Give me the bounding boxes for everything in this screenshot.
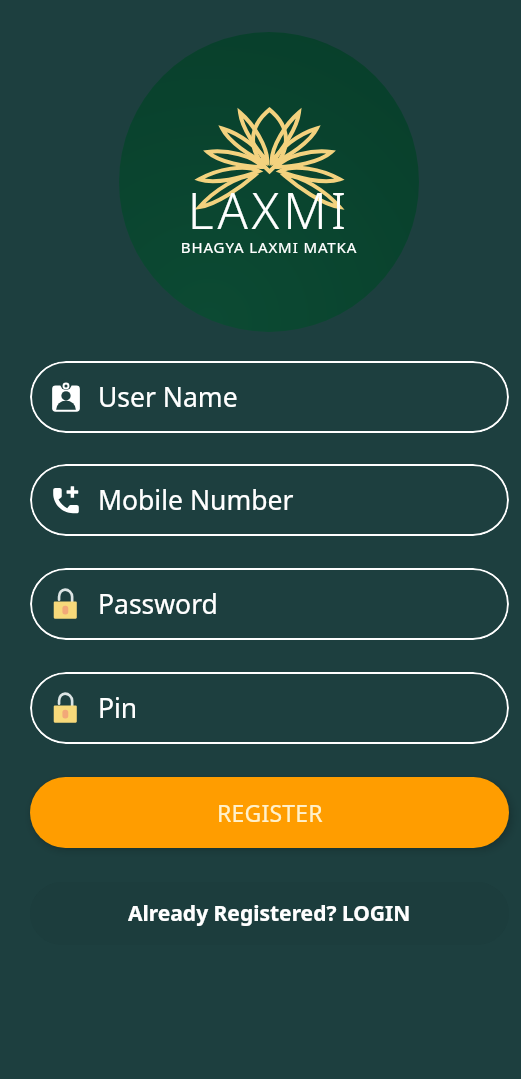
staticText: Mobile Number bbox=[98, 482, 294, 518]
button[interactable]: REGISTER bbox=[30, 777, 509, 848]
staticText: Password bbox=[98, 586, 218, 622]
staticText: Pin bbox=[98, 690, 138, 726]
button[interactable]: Name field bbox=[30, 361, 509, 433]
staticText: REGISTER bbox=[217, 797, 323, 828]
staticText: User Name bbox=[98, 379, 238, 415]
button[interactable]: Pin field bbox=[30, 672, 509, 744]
button[interactable]: Already Registered? LOGIN bbox=[30, 882, 509, 945]
staticText: Already Registered? LOGIN bbox=[128, 899, 411, 928]
staticText: BHAGYA LAXMI MATKA bbox=[119, 237, 419, 257]
button[interactable]: Phone field bbox=[30, 464, 509, 536]
button[interactable]: Password field bbox=[30, 568, 509, 640]
staticText: LAXMI bbox=[119, 176, 419, 244]
